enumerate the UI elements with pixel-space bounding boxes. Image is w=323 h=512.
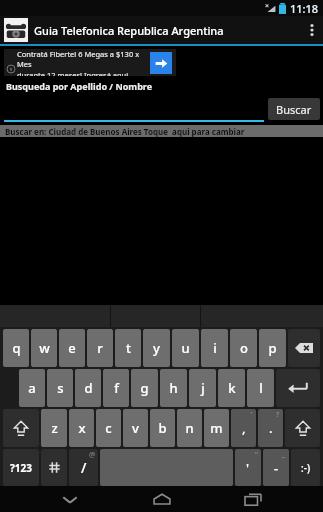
staticText: . — [269, 419, 273, 437]
button[interactable]: o — [230, 329, 257, 367]
button[interactable]: z — [41, 409, 67, 447]
button[interactable]: Backspace — [288, 329, 320, 367]
staticText: o — [240, 339, 248, 357]
staticText: Guia Telefonica Republica Argentina — [34, 23, 224, 38]
button[interactable]: Shift — [3, 409, 39, 447]
button[interactable]: t — [115, 329, 141, 367]
button[interactable]: f — [103, 369, 129, 407]
button[interactable]: More options — [301, 16, 323, 44]
staticText: m — [210, 419, 223, 437]
staticText: k — [228, 379, 236, 397]
button[interactable]: Buscar — [268, 98, 320, 120]
staticText: a — [28, 379, 36, 397]
staticText: u — [181, 339, 190, 357]
staticText: ? — [276, 410, 280, 420]
staticText: ' — [251, 410, 253, 420]
staticText: Contratá Fibertel 6 Megas a $130 x Mes — [17, 49, 150, 69]
staticText: Busqueda por Apellido / Nombre — [6, 80, 153, 92]
button[interactable]: _ — [263, 449, 289, 486]
button[interactable]: c — [96, 409, 121, 447]
staticText: @ — [89, 450, 96, 460]
staticText: p — [268, 339, 277, 357]
button[interactable]: @ — [69, 449, 98, 486]
button[interactable]: n — [177, 409, 202, 447]
button[interactable]: e — [59, 329, 85, 367]
button[interactable]: Recent apps — [231, 486, 275, 512]
button[interactable]: r — [87, 329, 113, 367]
button[interactable]: v — [123, 409, 148, 447]
staticText: h — [169, 379, 178, 397]
staticText: s — [57, 379, 64, 397]
staticText: x — [78, 419, 86, 437]
staticText: , — [242, 419, 246, 437]
button[interactable] — [0, 94, 268, 122]
staticText: b — [158, 419, 167, 437]
staticText: " — [255, 450, 258, 460]
button[interactable]: Enter — [276, 369, 320, 407]
staticText: w — [39, 339, 50, 357]
staticText: Buscar en: Ciudad de Buenos Aires Toque … — [5, 126, 245, 137]
button[interactable]: b — [150, 409, 175, 447]
staticText: e — [68, 339, 76, 357]
button[interactable]: h — [160, 369, 187, 407]
staticText: ?123 — [10, 461, 32, 475]
staticText: r — [97, 339, 103, 357]
staticText: / — [81, 458, 87, 477]
button[interactable]: " — [235, 449, 261, 486]
button[interactable]: y — [143, 329, 170, 367]
button[interactable]: i — [201, 329, 228, 367]
staticText: 11:18 — [290, 1, 319, 16]
button[interactable]: ? — [258, 409, 283, 447]
staticText: d — [84, 379, 93, 397]
button[interactable]: x — [69, 409, 94, 447]
button[interactable]: Contratá Fibertel 6 Megas a $130 x Mes — [4, 49, 176, 76]
staticText: v — [132, 419, 139, 437]
staticText: f — [114, 379, 119, 397]
button[interactable]: k — [218, 369, 245, 407]
button[interactable]: :-) — [291, 449, 320, 486]
staticText: j — [201, 379, 205, 397]
button[interactable]: q — [3, 329, 29, 367]
staticText: ' — [246, 459, 250, 477]
button[interactable]: a — [19, 369, 45, 407]
button[interactable]: ' — [231, 409, 256, 447]
staticText: q — [12, 339, 21, 357]
button[interactable]: Input method — [41, 449, 67, 486]
button[interactable]: w — [31, 329, 57, 367]
button[interactable]: g — [131, 369, 158, 407]
staticText: g — [140, 379, 149, 397]
staticText: z — [51, 419, 58, 437]
button[interactable]: Shift — [285, 409, 320, 447]
staticText: y — [153, 339, 160, 357]
staticText: - — [274, 459, 279, 477]
button[interactable]: Buscar en: Ciudad de Buenos Aires Toque … — [0, 125, 323, 137]
button[interactable]: ?123 — [3, 449, 39, 486]
button[interactable]: s — [47, 369, 73, 407]
staticText: _ — [282, 450, 286, 460]
staticText: i — [213, 339, 217, 357]
staticText: n — [185, 419, 194, 437]
staticText: l — [259, 379, 263, 397]
staticText: Buscar — [276, 102, 312, 117]
button[interactable]: m — [204, 409, 229, 447]
staticText: t — [126, 339, 131, 357]
button[interactable]: Open ad — [150, 52, 172, 74]
button[interactable]: p — [259, 329, 286, 367]
staticText: durante 12 meses! Ingresá aqui. — [17, 70, 131, 76]
button[interactable]: u — [172, 329, 199, 367]
button[interactable]: d — [75, 369, 101, 407]
button[interactable]: Hide keyboard — [48, 486, 92, 512]
staticText: c — [105, 419, 112, 437]
button[interactable]: Home — [140, 486, 184, 512]
button[interactable]: j — [189, 369, 216, 407]
button[interactable]: l — [247, 369, 274, 407]
staticText: :-) — [301, 461, 311, 475]
